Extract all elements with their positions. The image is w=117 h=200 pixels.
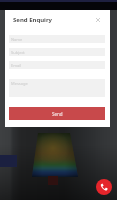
staticText: Message <box>11 81 28 86</box>
staticText: Send Enquiry <box>13 16 52 24</box>
button[interactable]: Subject <box>9 48 105 56</box>
button[interactable]: Close <box>92 14 104 26</box>
staticText: Send <box>52 111 63 117</box>
button[interactable]: Email <box>9 61 105 69</box>
button[interactable]: Send <box>9 107 105 120</box>
staticText: Subject <box>11 50 25 55</box>
button[interactable]: Call <box>96 179 112 195</box>
button[interactable]: Name <box>9 35 105 43</box>
staticText: Name <box>11 37 23 42</box>
staticText: Email <box>11 63 22 68</box>
